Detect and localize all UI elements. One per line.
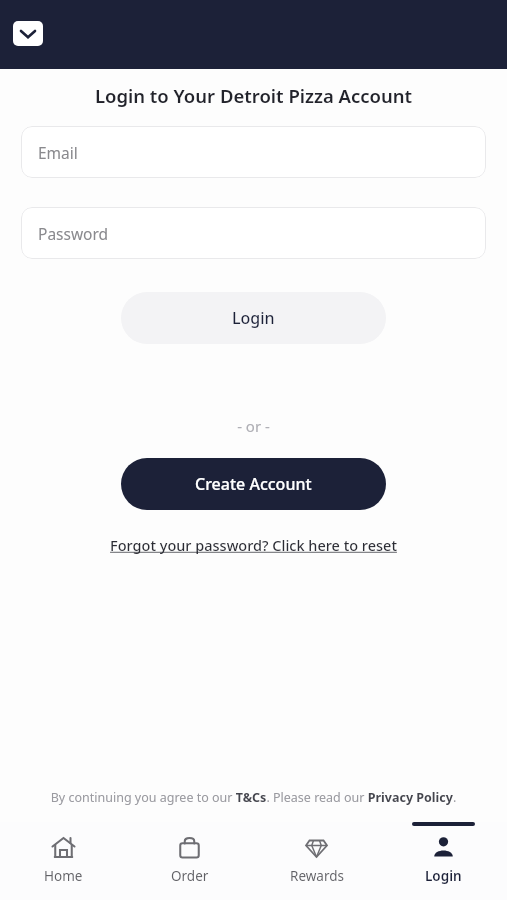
staticText: Login: [232, 307, 275, 329]
staticText: Home: [44, 867, 83, 885]
button[interactable]: Email: [21, 126, 486, 178]
button[interactable]: Order: [126, 822, 253, 900]
button[interactable]: Login: [121, 292, 386, 344]
button[interactable]: Rewards: [253, 822, 380, 900]
staticText: Rewards: [290, 867, 344, 885]
button[interactable]: Home: [0, 822, 126, 900]
button[interactable]: Login: [380, 822, 507, 900]
button[interactable]: Collapse: [13, 21, 43, 46]
staticText: By continuing you agree to our T&Cs. Ple…: [10, 789, 497, 806]
staticText: Create Account: [195, 473, 312, 495]
staticText: Password: [38, 223, 109, 244]
staticText: Email: [38, 142, 78, 163]
button[interactable]: Create Account: [121, 458, 386, 510]
staticText: - or -: [0, 416, 507, 436]
button[interactable]: Forgot your password? Click here to rese…: [0, 535, 507, 555]
staticText: Login: [425, 867, 462, 885]
staticText: Order: [171, 867, 209, 885]
staticText: Forgot your password? Click here to rese…: [110, 535, 397, 555]
staticText: Login to Your Detroit Pizza Account: [0, 83, 507, 108]
button[interactable]: Password: [21, 207, 486, 259]
